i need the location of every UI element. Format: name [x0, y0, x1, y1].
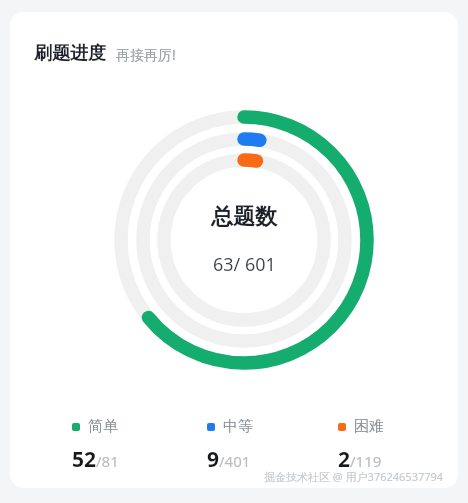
staticText: 掘金技术社区 @ 用户376246537794: [264, 469, 444, 484]
button[interactable]: 困难: [338, 417, 458, 474]
staticText: 52/81: [72, 445, 119, 474]
button[interactable]: 刷题进度: [10, 12, 458, 488]
staticText: 2/119: [338, 445, 382, 474]
staticText: 简单: [88, 417, 118, 436]
staticText: 中等: [223, 417, 253, 436]
button[interactable]: 中等: [207, 417, 342, 474]
staticText: 再接再厉!: [116, 45, 176, 64]
staticText: 刷题进度: [34, 42, 106, 65]
staticText: 总题数: [211, 203, 277, 231]
button[interactable]: 简单: [72, 417, 207, 474]
staticText: 困难: [354, 417, 384, 436]
staticText: 63/ 601: [213, 252, 276, 277]
staticText: 9/401: [207, 445, 251, 474]
